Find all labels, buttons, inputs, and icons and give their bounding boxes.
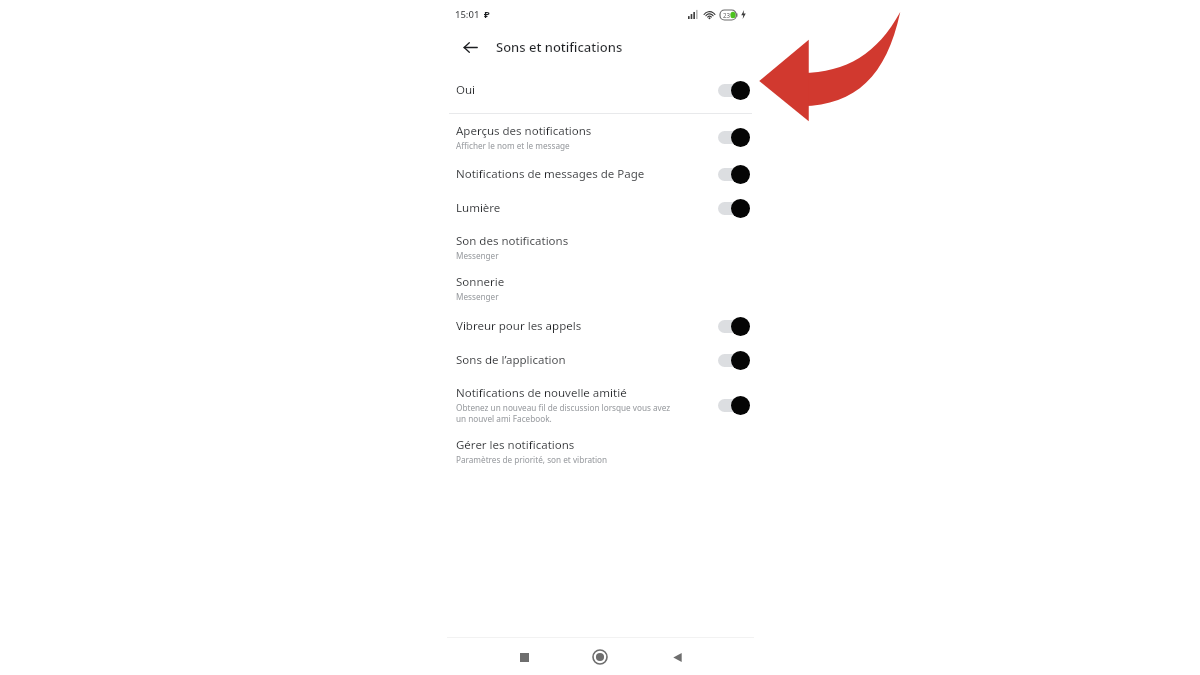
staticText: Sons et notifications (496, 38, 623, 56)
button[interactable]: Lumière (449, 191, 752, 225)
button[interactable]: Back (457, 34, 483, 60)
staticText: 15:01 (455, 8, 480, 21)
staticText: Sonnerie (456, 274, 505, 290)
button[interactable]: Back (662, 642, 692, 672)
button[interactable]: Toggle (716, 316, 750, 336)
button[interactable]: Recents (509, 642, 539, 672)
button[interactable]: Sonnerie (449, 267, 752, 308)
staticText: Lumière (456, 200, 501, 216)
button[interactable]: Toggle (716, 198, 750, 218)
staticText: ₽ (484, 8, 490, 21)
staticText: Afficher le nom et le message (456, 140, 570, 151)
button[interactable]: Home (585, 642, 615, 672)
staticText: Gérer les notifications (456, 437, 575, 453)
staticText: 23 (723, 11, 731, 19)
staticText: Messenger (456, 291, 499, 302)
staticText: Aperçus des notifications (456, 123, 592, 139)
staticText: Notifications de nouvelle amitié (456, 385, 627, 401)
button[interactable]: Toggle (716, 350, 750, 370)
button[interactable]: Notifications de messages de Page (449, 157, 752, 191)
button[interactable]: Toggle (716, 164, 750, 184)
staticText: Vibreur pour les appels (456, 318, 582, 334)
button[interactable]: Sons de l’application (449, 343, 752, 377)
button[interactable]: Toggle (716, 395, 750, 415)
staticText: Oui (456, 82, 476, 98)
button[interactable]: Toggle (716, 127, 750, 147)
staticText: Messenger (456, 250, 499, 261)
button[interactable]: Gérer les notifications (449, 430, 752, 471)
staticText: Paramètres de priorité, son et vibration (456, 454, 608, 465)
button[interactable]: Vibreur pour les appels (449, 308, 752, 343)
staticText: un nouvel ami Facebook. (456, 413, 552, 424)
button[interactable]: Toggle (716, 80, 750, 100)
button[interactable]: Notifications de nouvelle amitié (449, 377, 752, 430)
staticText: Notifications de messages de Page (456, 166, 645, 182)
staticText: Son des notifications (456, 233, 569, 249)
button[interactable]: Aperçus des notifications (449, 119, 752, 157)
button[interactable]: Son des notifications (449, 225, 752, 267)
button[interactable]: Oui (449, 76, 752, 104)
staticText: Obtenez un nouveau fil de discussion lor… (456, 402, 671, 413)
staticText: Sons de l’application (456, 352, 566, 368)
